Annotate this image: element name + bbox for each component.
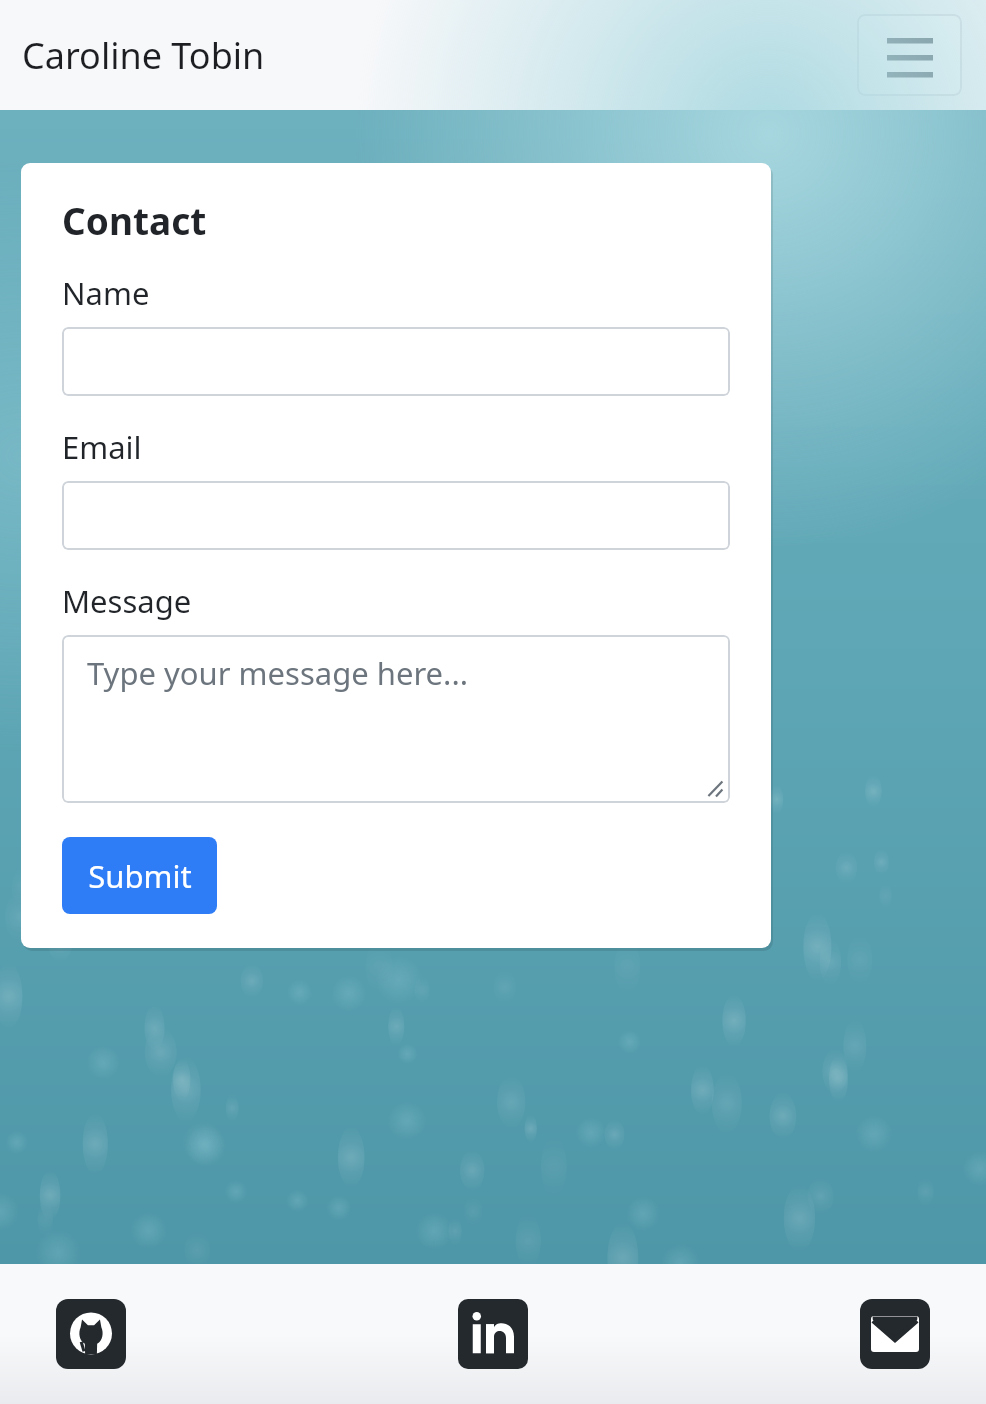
button[interactable]: GitHub [56, 1299, 126, 1369]
button[interactable]: Submit [62, 837, 217, 914]
button[interactable]: LinkedIn [458, 1299, 528, 1369]
button[interactable]: Type your message here... [62, 635, 730, 803]
button[interactable]: Open menu [857, 14, 962, 96]
staticText: Contact [62, 195, 207, 245]
button[interactable] [62, 481, 730, 550]
button[interactable] [62, 327, 730, 396]
staticText: Message [62, 580, 192, 622]
staticText: Name [62, 272, 150, 314]
staticText: Type your message here... [87, 652, 469, 694]
staticText: Caroline Tobin [22, 31, 265, 80]
button[interactable]: Email [860, 1299, 930, 1369]
staticText: Email [62, 426, 142, 468]
staticText: Submit [88, 855, 192, 897]
